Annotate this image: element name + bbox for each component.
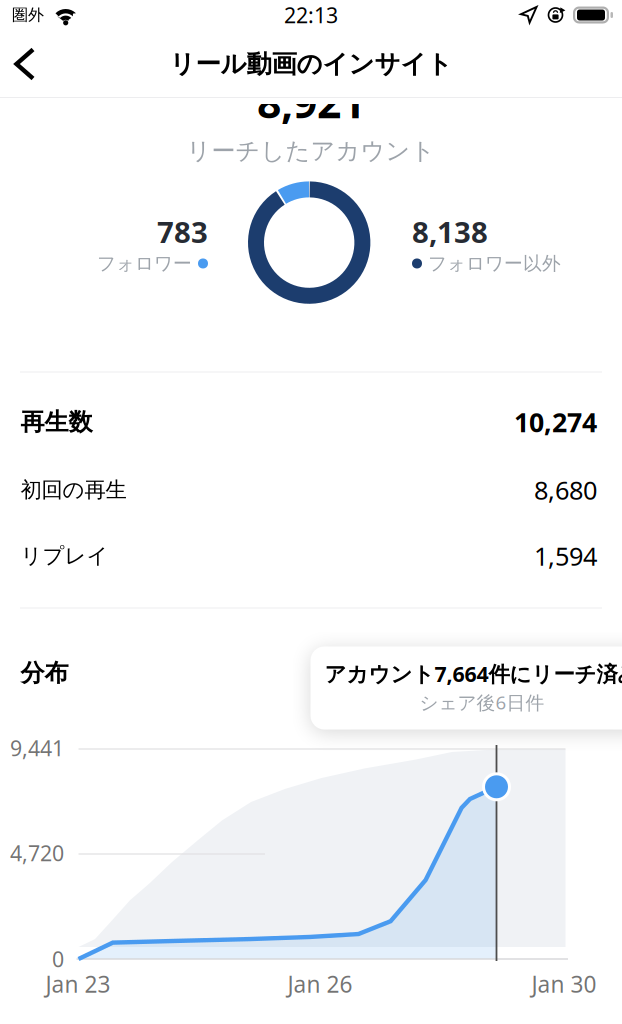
staticText: 0 [52,945,64,973]
staticText: 22:13 [284,1,338,29]
staticText: 8,680 [534,473,597,507]
staticText: 10,274 [514,404,597,440]
staticText: 圏外 [12,5,44,25]
staticText: リーチしたアカウント [186,136,435,166]
button[interactable]: 戻る [0,32,50,96]
staticText: アカウント7,664件にリーチ済み [324,659,622,688]
staticText: 8,138 [412,212,488,251]
staticText: 4,720 [10,839,64,867]
staticText: リール動画のインサイト [169,48,452,79]
staticText: 1,594 [534,539,597,573]
staticText: 初回の再生 [20,477,126,503]
staticText: フォロワー以外 [428,252,561,275]
staticText: 783 [157,212,208,251]
staticText: 再生数 [20,407,92,437]
staticText: 8,921 [257,73,365,130]
staticText: リプレイ [20,543,108,569]
staticText: 9,441 [10,734,64,762]
staticText: Jan 23 [45,969,110,999]
staticText: 分布 [20,658,68,688]
staticText: フォロワー [97,252,192,275]
staticText: Jan 26 [287,969,352,999]
staticText: Jan 30 [531,969,596,999]
staticText: シェア後6日件 [419,690,544,715]
